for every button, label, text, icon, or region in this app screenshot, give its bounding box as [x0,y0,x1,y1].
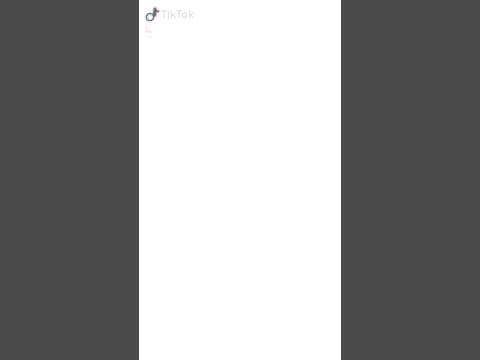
staticText: TikTok [161,7,194,21]
button[interactable]: TikTok [145,7,194,21]
